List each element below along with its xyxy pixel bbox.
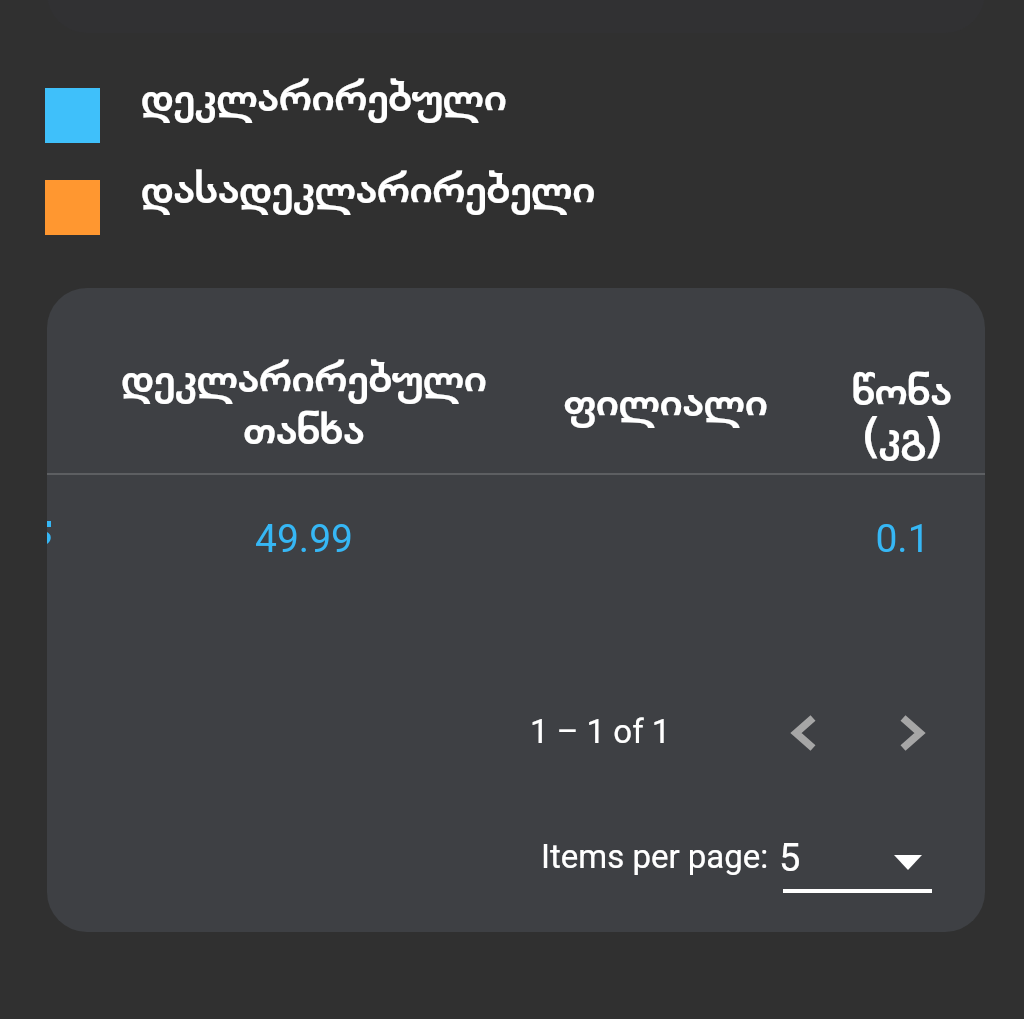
button[interactable] [47, 288, 985, 473]
staticText: 49.99 [255, 516, 353, 562]
staticText: 1 – 1 of 1 [530, 712, 671, 751]
staticText: ფილიალი [563, 379, 768, 425]
button[interactable] [47, 475, 985, 591]
button[interactable]: Next page [881, 703, 941, 763]
staticText: დეკლარირებული [141, 74, 507, 120]
button[interactable]: 5 [777, 818, 937, 903]
button[interactable]: Previous page [774, 703, 834, 763]
staticText: 0.1 [875, 516, 930, 562]
staticText: Items per page: [541, 837, 769, 876]
button[interactable] [45, 88, 505, 143]
staticText: (კგ) [863, 412, 942, 458]
staticText: თანხა [243, 407, 365, 453]
button[interactable] [45, 180, 593, 235]
staticText: წონა [852, 368, 952, 414]
staticText: დასადეკლარირებელი [141, 166, 596, 212]
staticText: დეკლარირებული [121, 355, 487, 401]
staticText: 5 [779, 836, 801, 881]
